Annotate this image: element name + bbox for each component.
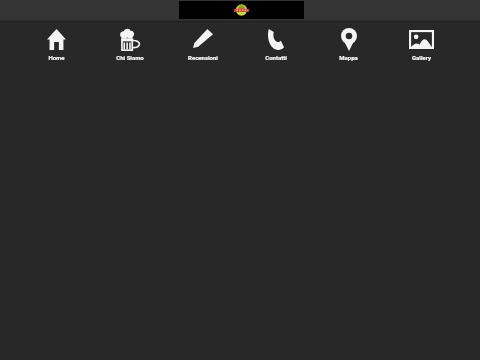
- button[interactable]: Chi Siamo: [93, 22, 166, 67]
- button[interactable]: Contatti: [239, 22, 312, 67]
- staticText: Recensioni: [188, 54, 218, 61]
- button[interactable]: Recensioni: [166, 22, 239, 67]
- staticText: Gallery: [412, 54, 431, 61]
- button[interactable]: Mappa: [312, 22, 385, 67]
- staticText: Chi Siamo: [116, 54, 144, 61]
- staticText: Mappa: [339, 54, 358, 61]
- button[interactable]: Home: [20, 22, 93, 67]
- button[interactable]: Logo, torna alla home: [179, 1, 304, 19]
- button[interactable]: Gallery: [385, 22, 458, 67]
- staticText: Home: [48, 54, 65, 61]
- staticText: Contatti: [265, 54, 287, 61]
